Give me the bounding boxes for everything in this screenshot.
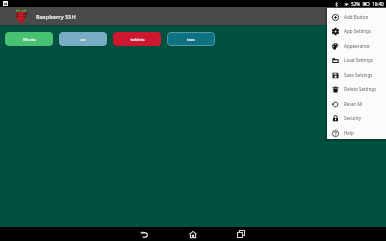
button[interactable]: Recent apps xyxy=(229,227,253,241)
button[interactable]: Reset All xyxy=(327,97,386,111)
button[interactable]: Help xyxy=(327,126,386,140)
button[interactable]: App Settings xyxy=(327,24,386,38)
staticText: an xyxy=(80,37,86,43)
button[interactable]: Delete Settings xyxy=(327,82,386,96)
staticText: Add Button xyxy=(344,14,369,20)
button[interactable]: an xyxy=(59,32,107,46)
button[interactable]: Save Settings xyxy=(327,68,386,82)
button[interactable]: two xyxy=(167,32,215,46)
button[interactable]: Security xyxy=(327,111,386,125)
staticText: Security xyxy=(344,115,362,121)
button[interactable]: Home xyxy=(181,227,205,241)
staticText: Reset All xyxy=(344,101,363,107)
staticText: Delete Settings xyxy=(344,86,377,92)
staticText: Works xyxy=(23,37,36,43)
staticText: Raspberry SSH xyxy=(36,13,76,21)
staticText: two xyxy=(187,37,195,43)
staticText: 52% xyxy=(351,1,361,7)
button[interactable]: Add Button xyxy=(327,10,386,24)
staticText: Help xyxy=(344,130,354,136)
button[interactable]: Works xyxy=(5,32,53,46)
staticText: 16:40 xyxy=(372,1,384,7)
button[interactable]: Appearance xyxy=(327,39,386,53)
staticText: Load Settings xyxy=(344,57,373,63)
button[interactable]: Load Settings xyxy=(327,53,386,67)
button[interactable]: tablets xyxy=(113,32,161,46)
button[interactable]: Back xyxy=(132,227,156,241)
staticText: tablets xyxy=(130,37,145,43)
staticText: Save Settings xyxy=(344,72,373,78)
staticText: App Settings xyxy=(344,28,371,34)
staticText: Appearance xyxy=(344,43,370,49)
